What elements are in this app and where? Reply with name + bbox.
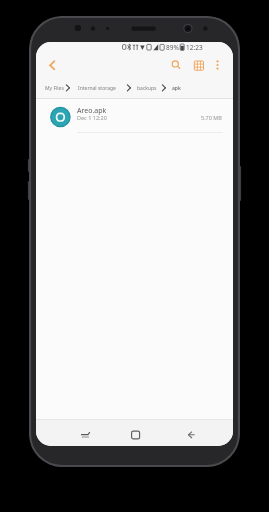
- button[interactable]: [42, 56, 62, 75]
- staticText: 12:23: [186, 43, 203, 52]
- button[interactable]: Internal storage: [76, 82, 118, 94]
- staticText: backups: [137, 85, 157, 92]
- staticText: Internal storage: [78, 85, 116, 92]
- staticText: 89%: [166, 43, 179, 52]
- button[interactable]: [192, 56, 208, 75]
- button[interactable]: apk: [170, 82, 186, 94]
- button[interactable]: [124, 419, 148, 446]
- staticText: Areo.apk: [77, 106, 107, 116]
- button[interactable]: [73, 419, 97, 446]
- button[interactable]: Areo.apk: [36, 99, 233, 133]
- button[interactable]: [169, 56, 183, 75]
- button[interactable]: [212, 56, 224, 75]
- staticText: My Files: [45, 85, 64, 92]
- button[interactable]: My Files: [42, 82, 70, 94]
- button[interactable]: backups: [135, 82, 159, 94]
- staticText: Dec 1 12:20: [77, 114, 107, 121]
- staticText: 5.70 MB: [201, 114, 222, 121]
- button[interactable]: [179, 419, 203, 446]
- staticText: apk: [172, 85, 181, 92]
